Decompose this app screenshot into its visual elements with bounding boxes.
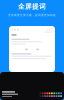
staticText: 支持横屏全屏方案，提词器更加高效 bbox=[8, 13, 56, 17]
staticText: 全屏提词 bbox=[18, 2, 46, 11]
